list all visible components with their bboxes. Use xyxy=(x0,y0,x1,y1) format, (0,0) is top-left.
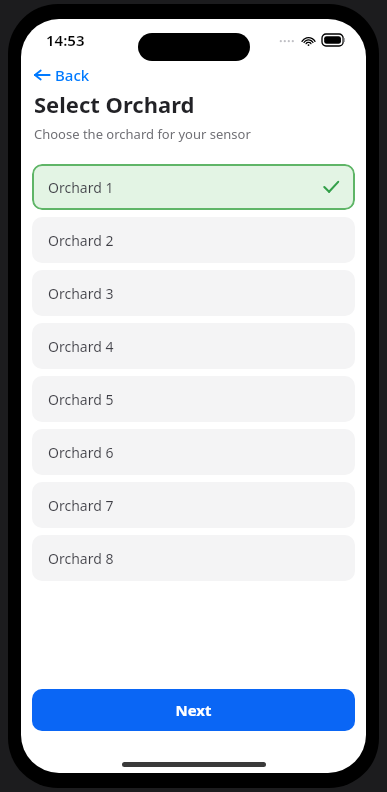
button[interactable]: Next xyxy=(32,689,355,731)
button[interactable]: Back xyxy=(32,63,92,87)
button[interactable]: Orchard 7 xyxy=(32,482,355,528)
staticText: Orchard 7 xyxy=(48,496,114,515)
button[interactable]: Orchard 5 xyxy=(32,376,355,422)
button[interactable]: Orchard 4 xyxy=(32,323,355,369)
staticText: Orchard 4 xyxy=(48,337,114,356)
staticText: Orchard 2 xyxy=(48,231,114,250)
button[interactable]: Orchard 3 xyxy=(32,270,355,316)
staticText: Choose the orchard for your sensor xyxy=(34,125,251,143)
staticText: Orchard 1 xyxy=(48,178,114,197)
staticText: Orchard 6 xyxy=(48,443,114,462)
button[interactable]: Orchard 2 xyxy=(32,217,355,263)
button[interactable]: Orchard 6 xyxy=(32,429,355,475)
other: Back xyxy=(34,67,50,83)
staticText: Select Orchard xyxy=(34,89,195,119)
staticText: Orchard 5 xyxy=(48,390,114,409)
button[interactable]: Orchard 1 xyxy=(32,164,355,210)
button[interactable]: Orchard 8 xyxy=(32,535,355,581)
staticText: Back xyxy=(55,65,90,85)
staticText: Orchard 3 xyxy=(48,284,114,303)
staticText: Orchard 8 xyxy=(48,549,114,568)
staticText: Next xyxy=(175,700,212,720)
staticText: 14:53 xyxy=(46,30,85,50)
